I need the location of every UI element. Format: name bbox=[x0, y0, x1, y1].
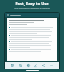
button[interactable]: Scan bbox=[11, 64, 14, 67]
button[interactable]: Sign bbox=[34, 64, 37, 67]
button[interactable]: Scan bbox=[5, 13, 59, 69]
button[interactable]: Crop bbox=[19, 64, 22, 67]
button[interactable]: Home bbox=[26, 70, 39, 71]
button[interactable]: Filter bbox=[27, 64, 30, 67]
staticText: Scan documents anywhere in seconds bbox=[0, 7, 64, 10]
staticText: Fast, Easy to Use bbox=[0, 1, 64, 6]
button[interactable]: Share bbox=[42, 64, 45, 67]
button[interactable]: More bbox=[50, 64, 53, 67]
